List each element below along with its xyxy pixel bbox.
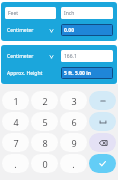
- staticText: 0.00: [64, 27, 74, 34]
- staticText: 5 ft. 5.00 in: [64, 70, 92, 77]
- button[interactable]: Feet: [5, 7, 56, 19]
- staticText: 9: [71, 137, 77, 149]
- staticText: .: [72, 158, 75, 170]
- button[interactable]: 0: [31, 154, 58, 173]
- button[interactable]: Centimeter: [5, 24, 56, 36]
- button[interactable]: 0.00: [61, 24, 113, 36]
- button[interactable]: Done: [89, 154, 116, 173]
- staticText: 7: [13, 137, 19, 149]
- button[interactable]: Space: [89, 112, 116, 131]
- button[interactable]: 166.1: [61, 50, 113, 62]
- staticText: Centimeter: [7, 53, 34, 60]
- button[interactable]: Centimeter: [5, 50, 56, 62]
- button[interactable]: 7: [2, 133, 29, 152]
- button[interactable]: Minus: [89, 91, 116, 110]
- button[interactable]: Inch: [61, 7, 113, 19]
- staticText: Approx. Height: [7, 70, 43, 77]
- staticText: 1: [13, 95, 19, 107]
- staticText: 5: [42, 116, 48, 128]
- staticText: Centimeter: [7, 27, 34, 34]
- staticText: Inch: [64, 10, 75, 17]
- staticText: 4: [13, 116, 19, 128]
- staticText: 166.1: [64, 53, 77, 60]
- button[interactable]: 3: [60, 91, 87, 110]
- button[interactable]: 2: [31, 91, 58, 110]
- button[interactable]: 5: [31, 112, 58, 131]
- button[interactable]: 6: [60, 112, 87, 131]
- button[interactable]: 4: [2, 112, 29, 131]
- button[interactable]: 1: [2, 91, 29, 110]
- staticText: 8: [42, 137, 48, 149]
- staticText: 6: [71, 116, 77, 128]
- button[interactable]: 9: [60, 133, 87, 152]
- staticText: 3: [71, 95, 77, 107]
- button[interactable]: .: [2, 154, 29, 173]
- button[interactable]: .: [60, 154, 87, 173]
- button[interactable]: 8: [31, 133, 58, 152]
- staticText: 2: [42, 95, 48, 107]
- staticText: .: [14, 158, 17, 170]
- staticText: Feet: [8, 10, 19, 17]
- button[interactable]: Backspace: [89, 133, 116, 152]
- staticText: 0: [42, 158, 48, 170]
- button[interactable]: 5 ft. 5.00 in: [61, 67, 113, 79]
